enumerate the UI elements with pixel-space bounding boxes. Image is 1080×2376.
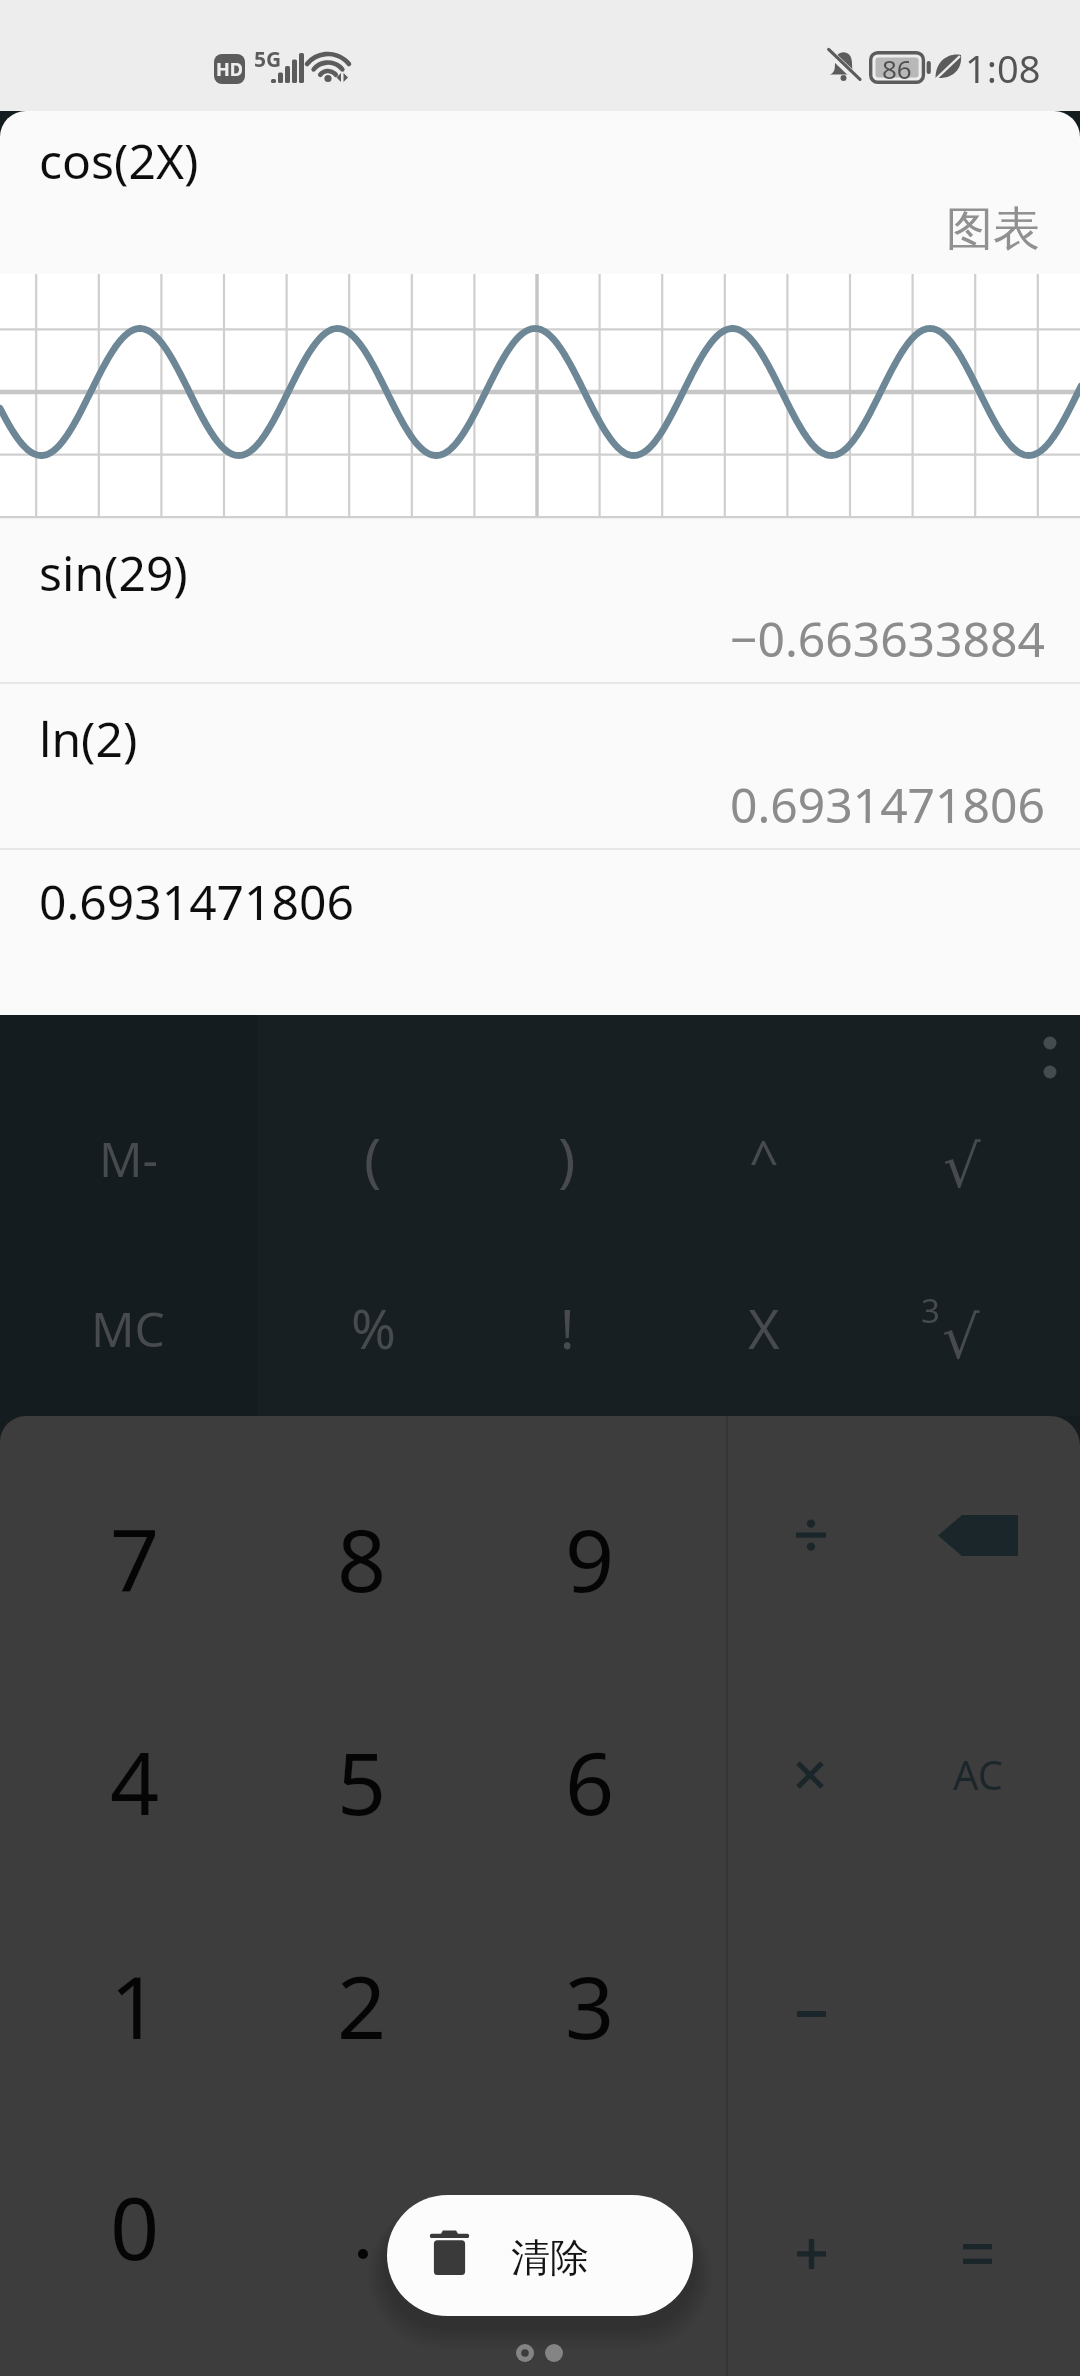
staticText: 0 xyxy=(110,2168,160,2285)
staticText: 9 xyxy=(565,1500,615,1617)
button[interactable]: Equals xyxy=(894,2154,1060,2354)
button[interactable]: More options xyxy=(1012,1008,1080,1108)
button[interactable]: 2 xyxy=(249,1892,475,2118)
button[interactable]: 7 xyxy=(22,1445,248,1671)
button[interactable]: Cube root xyxy=(861,1268,1055,1388)
staticText: ln(2) xyxy=(39,706,138,771)
staticText: √ xyxy=(943,1132,981,1201)
staticText: 4 xyxy=(110,1723,160,1840)
button[interactable]: 8 xyxy=(249,1445,475,1671)
button[interactable]: MC xyxy=(31,1268,225,1388)
button[interactable]: ! xyxy=(470,1268,664,1388)
button[interactable]: Backspace xyxy=(895,1435,1061,1635)
button[interactable]: ^ xyxy=(667,1098,861,1218)
button[interactable]: X xyxy=(667,1268,861,1388)
staticText: % xyxy=(351,1291,396,1365)
staticText: 2 xyxy=(337,1947,387,2064)
staticText: 6 xyxy=(565,1723,615,1840)
staticText: 0.6931471806 xyxy=(39,869,354,934)
button[interactable]: 9 xyxy=(477,1445,703,1671)
staticText: 3 xyxy=(921,1288,940,1333)
button[interactable]: 6 xyxy=(477,1668,703,1894)
staticText: √ xyxy=(942,1303,980,1372)
staticText: 5 xyxy=(337,1723,387,1840)
button[interactable]: Multiply xyxy=(727,1675,893,1875)
staticText: 0.6931471806 xyxy=(730,772,1045,837)
staticText: 图表 xyxy=(946,200,1040,259)
staticText: ! xyxy=(560,1291,575,1365)
button[interactable]: ln(2) xyxy=(0,684,1080,848)
staticText: 8 xyxy=(337,1500,387,1617)
button[interactable]: sin(29) xyxy=(0,518,1080,682)
staticText: 7 xyxy=(110,1500,160,1617)
staticText: 86 xyxy=(882,51,912,84)
button[interactable]: 3 xyxy=(477,1892,703,2118)
staticText: MC xyxy=(91,1296,165,1361)
button[interactable]: Add xyxy=(728,2154,894,2354)
button[interactable]: 0.6931471806 xyxy=(0,850,1080,1014)
staticText: 5G xyxy=(254,45,282,74)
button[interactable]: 1 xyxy=(22,1892,248,2118)
staticText: ) xyxy=(558,1119,576,1198)
button[interactable]: Square root xyxy=(861,1098,1055,1218)
staticText: ( xyxy=(364,1119,382,1198)
staticText: 清除 xyxy=(511,2233,589,2282)
button[interactable]: M- xyxy=(31,1098,225,1218)
staticText: 3 xyxy=(565,1947,615,2064)
staticText: X xyxy=(748,1291,780,1365)
staticText: 1:08 xyxy=(965,42,1041,94)
button[interactable]: Decimal point xyxy=(249,2113,475,2339)
staticText: AC xyxy=(953,1747,1004,1801)
button[interactable]: AC xyxy=(895,1674,1061,1874)
button[interactable]: ) xyxy=(470,1098,664,1218)
staticText: sin(29) xyxy=(39,540,188,605)
button[interactable]: 5 xyxy=(249,1668,475,1894)
staticText: cos(2X) xyxy=(39,128,199,193)
button[interactable]: 0 xyxy=(22,2113,248,2339)
staticText: ^ xyxy=(749,1123,779,1194)
button[interactable]: 4 xyxy=(22,1668,248,1894)
staticText: HD xyxy=(216,57,243,82)
button[interactable]: ( xyxy=(276,1098,470,1218)
staticText: −0.663633884 xyxy=(730,606,1045,671)
button[interactable]: 清除 xyxy=(387,2195,693,2316)
staticText: 1 xyxy=(110,1947,160,2064)
staticText: M- xyxy=(99,1126,158,1191)
button[interactable]: % xyxy=(276,1268,470,1388)
